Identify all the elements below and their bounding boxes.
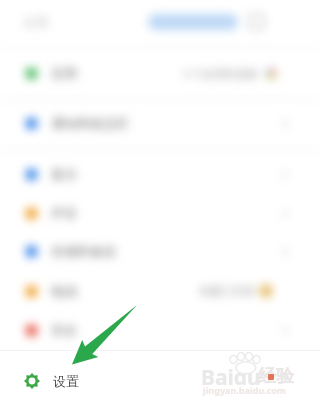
staticText: 存储和备份: [51, 243, 116, 259]
staticText: 设置: [53, 373, 79, 389]
staticText: 电量已充满: [199, 284, 254, 298]
button[interactable]: 声音: [0, 193, 320, 233]
staticText: 经验: [258, 365, 294, 388]
staticText: Baidu: [201, 363, 261, 392]
staticText: 声音: [51, 205, 77, 221]
staticText: 通知和状态栏: [51, 115, 129, 131]
button[interactable]: 存储和备份: [0, 231, 320, 271]
button[interactable]: 应用: [0, 53, 320, 93]
button[interactable]: 显示: [0, 154, 320, 194]
button[interactable]: 通知和状态栏: [0, 103, 320, 143]
button[interactable]: Search: [148, 14, 238, 30]
button[interactable]: 安全: [0, 310, 320, 350]
staticText: jingyan.baidu.com: [203, 384, 286, 396]
staticText: 电池: [51, 283, 77, 299]
button[interactable]: 设置: [0, 365, 320, 397]
button[interactable]: 电池: [0, 271, 320, 311]
staticText: 安全: [51, 322, 77, 338]
staticText: 应用: [51, 65, 77, 81]
staticText: 显示: [51, 166, 77, 182]
staticText: 4 个应用有更新: [183, 66, 259, 81]
